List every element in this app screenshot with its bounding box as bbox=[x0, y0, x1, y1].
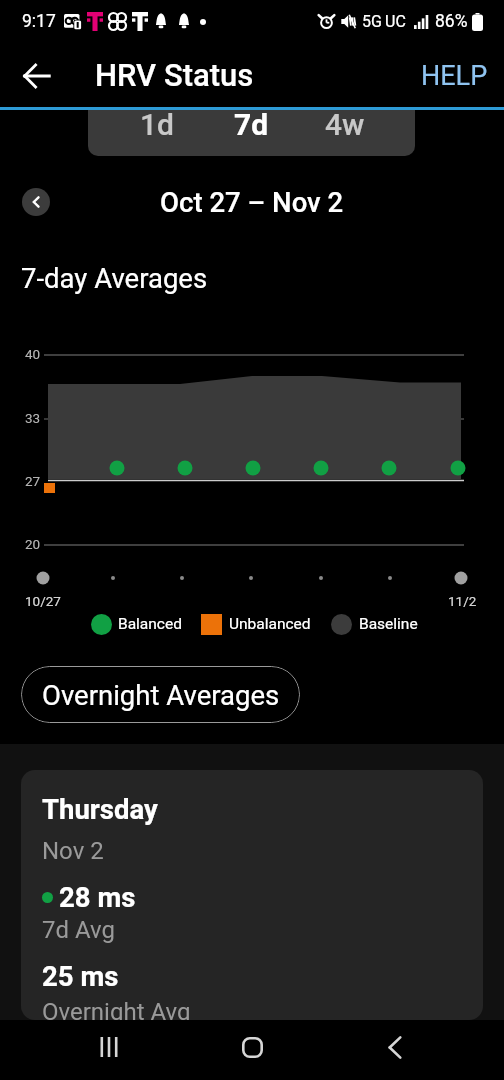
staticText: 11/2 bbox=[448, 593, 477, 609]
staticText: 28 ms bbox=[59, 881, 136, 913]
button[interactable]: Overnight Averages bbox=[21, 666, 300, 723]
staticText: Nov 2 bbox=[42, 837, 104, 865]
staticText: 20 bbox=[25, 536, 41, 552]
button[interactable]: 7d bbox=[204, 110, 298, 156]
staticText: Overnight Avg bbox=[42, 998, 191, 1020]
staticText: 86% bbox=[435, 11, 468, 32]
button[interactable]: Thursday bbox=[21, 770, 483, 1020]
button[interactable]: Back bbox=[10, 49, 64, 103]
staticText: 27 bbox=[25, 473, 41, 489]
staticText: 40 bbox=[25, 346, 41, 362]
staticText: 4w bbox=[325, 110, 365, 142]
button[interactable]: Previous week bbox=[22, 188, 50, 216]
button[interactable]: Home bbox=[225, 1020, 279, 1074]
staticText: Unbalanced bbox=[229, 615, 311, 633]
button[interactable]: HELP bbox=[405, 50, 504, 102]
staticText: UC bbox=[385, 12, 406, 31]
staticText: 10/27 bbox=[25, 593, 61, 609]
staticText: 7-day Averages bbox=[21, 262, 208, 294]
staticText: Overnight Averages bbox=[42, 679, 280, 711]
staticText: 25 ms bbox=[42, 960, 119, 992]
staticText: Thursday bbox=[42, 793, 158, 825]
staticText: 1d bbox=[140, 110, 174, 142]
staticText: 9:17 bbox=[22, 11, 56, 32]
button[interactable]: 4w bbox=[298, 110, 392, 156]
staticText: 7d bbox=[234, 110, 269, 142]
staticText: HELP bbox=[421, 60, 488, 92]
button[interactable]: Recents bbox=[82, 1020, 136, 1074]
staticText: HRV Status bbox=[95, 57, 254, 93]
staticText: 7d Avg bbox=[42, 916, 115, 944]
staticText: 33 bbox=[25, 410, 41, 426]
staticText: Baseline bbox=[359, 615, 418, 633]
staticText: Balanced bbox=[118, 615, 182, 633]
staticText: 5G bbox=[362, 12, 382, 31]
button[interactable]: 1d bbox=[110, 110, 204, 156]
button[interactable]: Back bbox=[368, 1020, 422, 1074]
staticText: Oct 27 – Nov 2 bbox=[160, 186, 344, 218]
